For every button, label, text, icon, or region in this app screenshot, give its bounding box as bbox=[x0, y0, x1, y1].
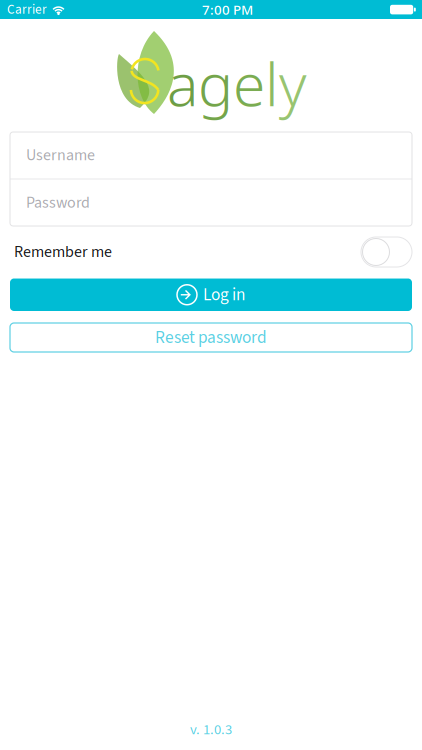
button[interactable]: Log in bbox=[10, 278, 412, 311]
staticText: Reset password bbox=[155, 325, 267, 350]
staticText: a bbox=[167, 43, 198, 123]
button[interactable]: Remember me bbox=[361, 237, 412, 267]
staticText: Username bbox=[26, 144, 95, 167]
button[interactable]: Password bbox=[10, 179, 412, 226]
staticText: Password bbox=[26, 191, 90, 214]
button[interactable]: Username bbox=[10, 132, 412, 178]
staticText: l bbox=[265, 43, 279, 123]
staticText: y bbox=[279, 43, 307, 123]
staticText: 7:00 PM bbox=[202, 0, 253, 19]
staticText: Log in bbox=[203, 282, 245, 307]
staticText: Remember me bbox=[14, 241, 112, 263]
button[interactable]: Reset password bbox=[10, 323, 412, 352]
staticText: g bbox=[198, 43, 233, 123]
staticText: Carrier bbox=[7, 0, 47, 19]
staticText: e bbox=[233, 43, 265, 123]
staticText: v. 1.0.3 bbox=[190, 719, 232, 740]
